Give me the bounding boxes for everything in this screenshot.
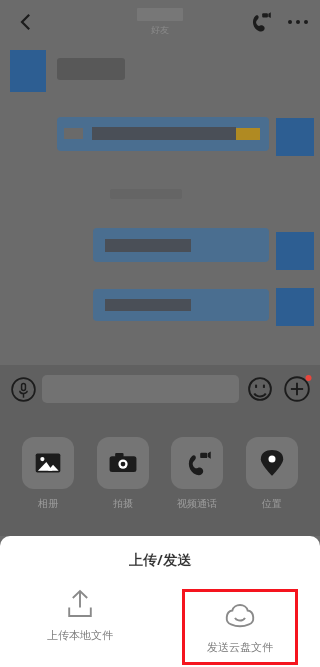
button[interactable]: 相册 <box>15 437 81 510</box>
staticText: 发送云盘文件 <box>207 640 273 654</box>
staticText: 上传/发送 <box>0 550 320 569</box>
staticText: 视频通话 <box>177 497 217 510</box>
staticText: 位置 <box>262 497 282 510</box>
staticText: 相册 <box>38 497 58 510</box>
button[interactable]: 视频通话 <box>164 437 230 510</box>
button[interactable]: Video call <box>242 4 278 40</box>
button[interactable]: Emoji <box>245 374 275 404</box>
button[interactable]: 位置 <box>239 437 305 510</box>
staticText: 好友 <box>151 24 169 35</box>
button[interactable]: More options <box>280 4 316 40</box>
button[interactable]: 拍摄 <box>90 437 156 510</box>
button[interactable]: More <box>282 374 312 404</box>
button[interactable]: Back <box>6 2 46 42</box>
staticText: 拍摄 <box>113 497 133 510</box>
staticText: 上传本地文件 <box>47 628 113 642</box>
button[interactable]: Voice message <box>6 372 40 406</box>
button[interactable]: 上传本地文件 <box>0 589 160 642</box>
button[interactable]: 发送云盘文件 <box>185 592 295 662</box>
